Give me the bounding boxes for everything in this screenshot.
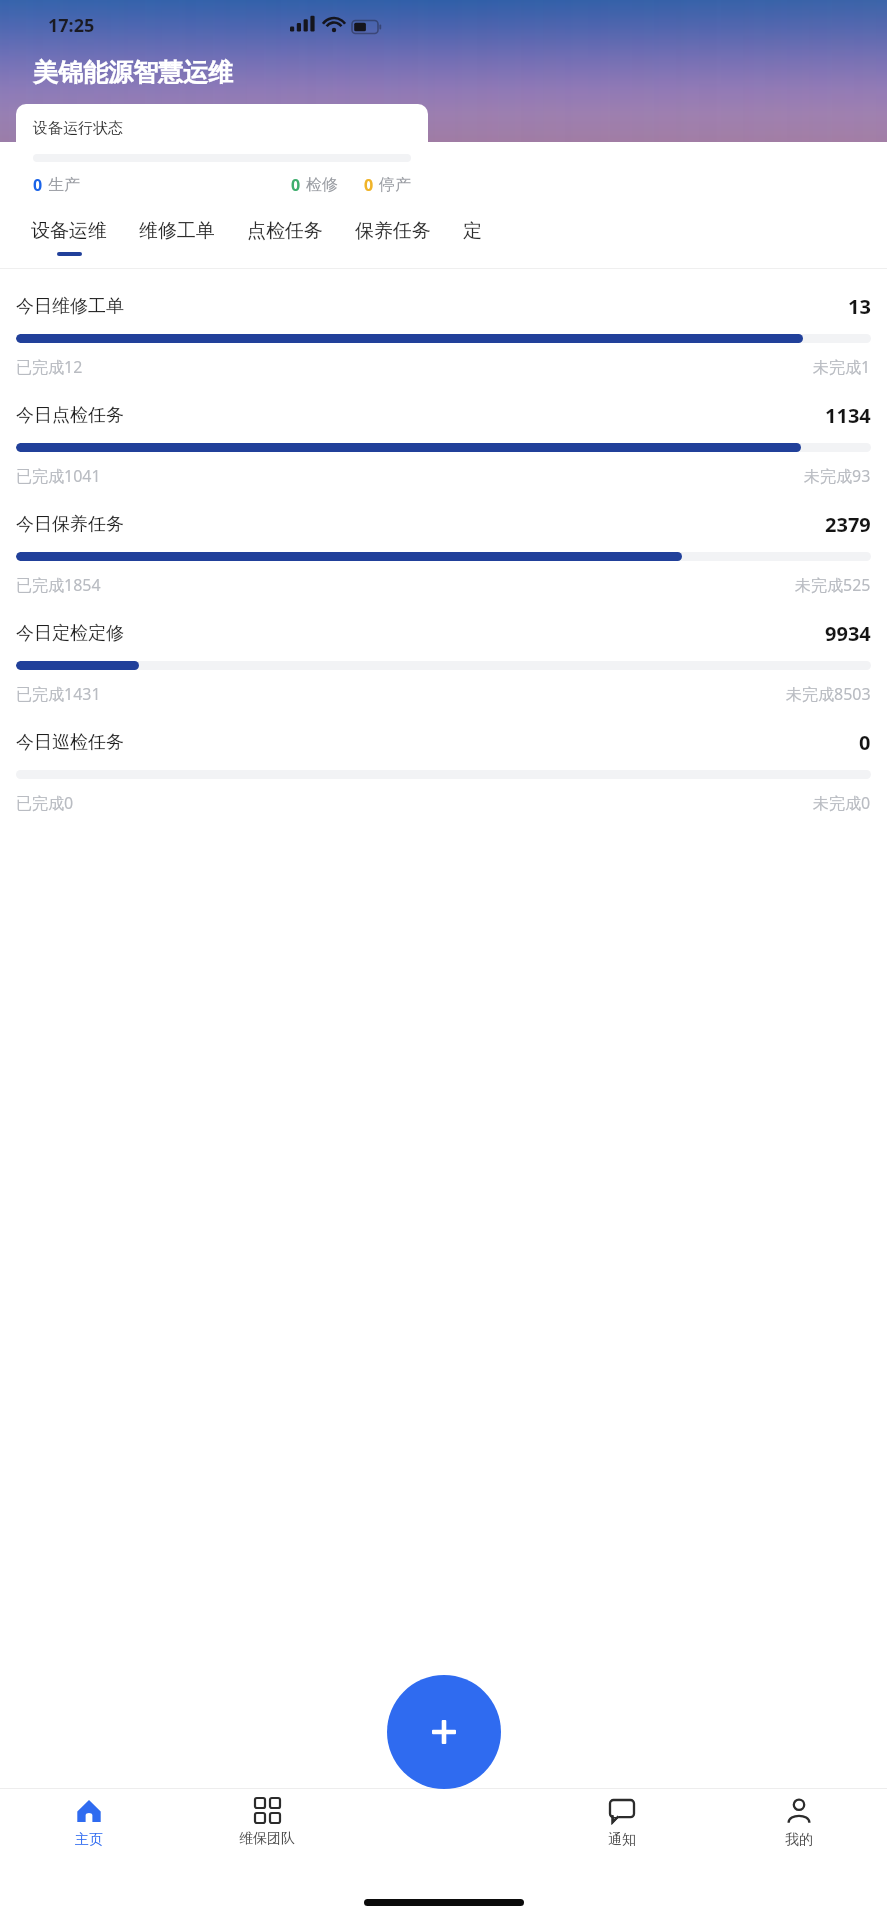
staticText: 2379 [825, 511, 871, 538]
staticText: 未完成8503 [786, 683, 871, 705]
button[interactable]: 今日保养任务 [0, 497, 887, 606]
staticText: 停产 [379, 175, 411, 195]
staticText: 0 [364, 174, 374, 196]
staticText: 设备运维 [31, 219, 107, 243]
staticText: 今日点检任务 [16, 404, 124, 427]
staticText: 今日维修工单 [16, 295, 124, 318]
staticText: 1134 [825, 402, 871, 429]
staticText: 主页 [75, 1831, 103, 1849]
staticText: 已完成0 [16, 792, 74, 814]
staticText: 定 [463, 219, 482, 243]
button[interactable]: 通知 [533, 1788, 710, 1849]
staticText: 已完成1431 [16, 683, 101, 705]
staticText: 维保团队 [239, 1830, 295, 1848]
button[interactable]: 今日点检任务 [0, 388, 887, 497]
button[interactable]: 主页 [0, 1788, 178, 1849]
button[interactable]: 我的 [710, 1788, 887, 1849]
button[interactable]: 维修工单 [123, 206, 231, 268]
staticText: 已完成1041 [16, 465, 101, 487]
staticText: 9934 [825, 620, 871, 647]
button[interactable]: 今日维修工单 [0, 279, 887, 388]
button[interactable]: 今日定检定修 [0, 606, 887, 715]
button[interactable]: 新建 [387, 1675, 501, 1789]
staticText: 今日保养任务 [16, 513, 124, 536]
staticText: 未完成0 [813, 792, 871, 814]
staticText: 0 [33, 174, 43, 196]
button[interactable]: 保养任务 [339, 206, 447, 268]
staticText: 未完成525 [795, 574, 871, 596]
staticText: 生产 [48, 175, 80, 195]
staticText: 今日巡检任务 [16, 731, 124, 754]
staticText: 未完成93 [804, 465, 871, 487]
staticText: 检修 [306, 175, 338, 195]
staticText: 设备运行状态 [33, 119, 123, 138]
staticText: 通知 [608, 1831, 636, 1849]
staticText: 已完成12 [16, 356, 83, 378]
button[interactable]: 点检任务 [231, 206, 339, 268]
button[interactable]: 设备运行状态 [16, 104, 428, 206]
staticText: 维修工单 [139, 219, 215, 243]
button[interactable]: 今日巡检任务 [0, 715, 887, 824]
staticText: 点检任务 [247, 219, 323, 243]
staticText: 13 [848, 293, 871, 320]
staticText: 17:25 [48, 13, 95, 38]
button[interactable]: 定 [447, 206, 498, 268]
button[interactable]: 维保团队 [178, 1788, 356, 1848]
staticText: 保养任务 [355, 219, 431, 243]
staticText: 0 [291, 174, 301, 196]
staticText: 已完成1854 [16, 574, 101, 596]
staticText: 美锦能源智慧运维 [33, 57, 233, 88]
staticText: 今日定检定修 [16, 622, 124, 645]
staticText: 未完成1 [813, 356, 871, 378]
staticText: 0 [859, 729, 871, 756]
staticText: 我的 [785, 1831, 813, 1849]
button[interactable]: 设备运维 [15, 206, 123, 268]
